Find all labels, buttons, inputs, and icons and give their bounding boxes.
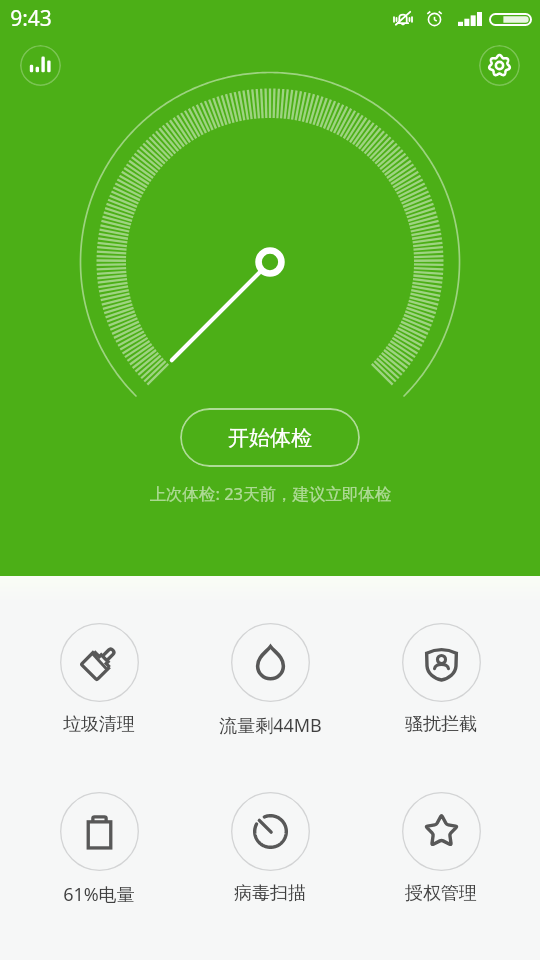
staticText: 骚扰拦截 bbox=[405, 713, 477, 736]
button[interactable]: 61%电量 bbox=[14, 792, 184, 907]
staticText: 垃圾清理 bbox=[63, 713, 135, 736]
staticText: 授权管理 bbox=[405, 882, 477, 905]
button[interactable]: Statistics bbox=[20, 45, 61, 86]
button[interactable]: 流量剩44MB bbox=[185, 623, 355, 738]
staticText: 开始体检 bbox=[228, 425, 312, 451]
button[interactable]: 开始体检 bbox=[180, 408, 360, 467]
button[interactable]: Settings bbox=[479, 45, 520, 86]
button[interactable]: 骚扰拦截 bbox=[356, 623, 526, 736]
button[interactable]: 授权管理 bbox=[356, 792, 526, 905]
button[interactable]: 垃圾清理 bbox=[14, 623, 184, 736]
button[interactable]: 病毒扫描 bbox=[185, 792, 355, 905]
staticText: 61%电量 bbox=[63, 882, 135, 907]
staticText: 病毒扫描 bbox=[234, 882, 306, 905]
staticText: 流量剩44MB bbox=[219, 713, 322, 738]
staticText: 上次体检: 23天前，建议立即体检 bbox=[149, 482, 392, 505]
staticText: 9:43 bbox=[10, 4, 52, 33]
